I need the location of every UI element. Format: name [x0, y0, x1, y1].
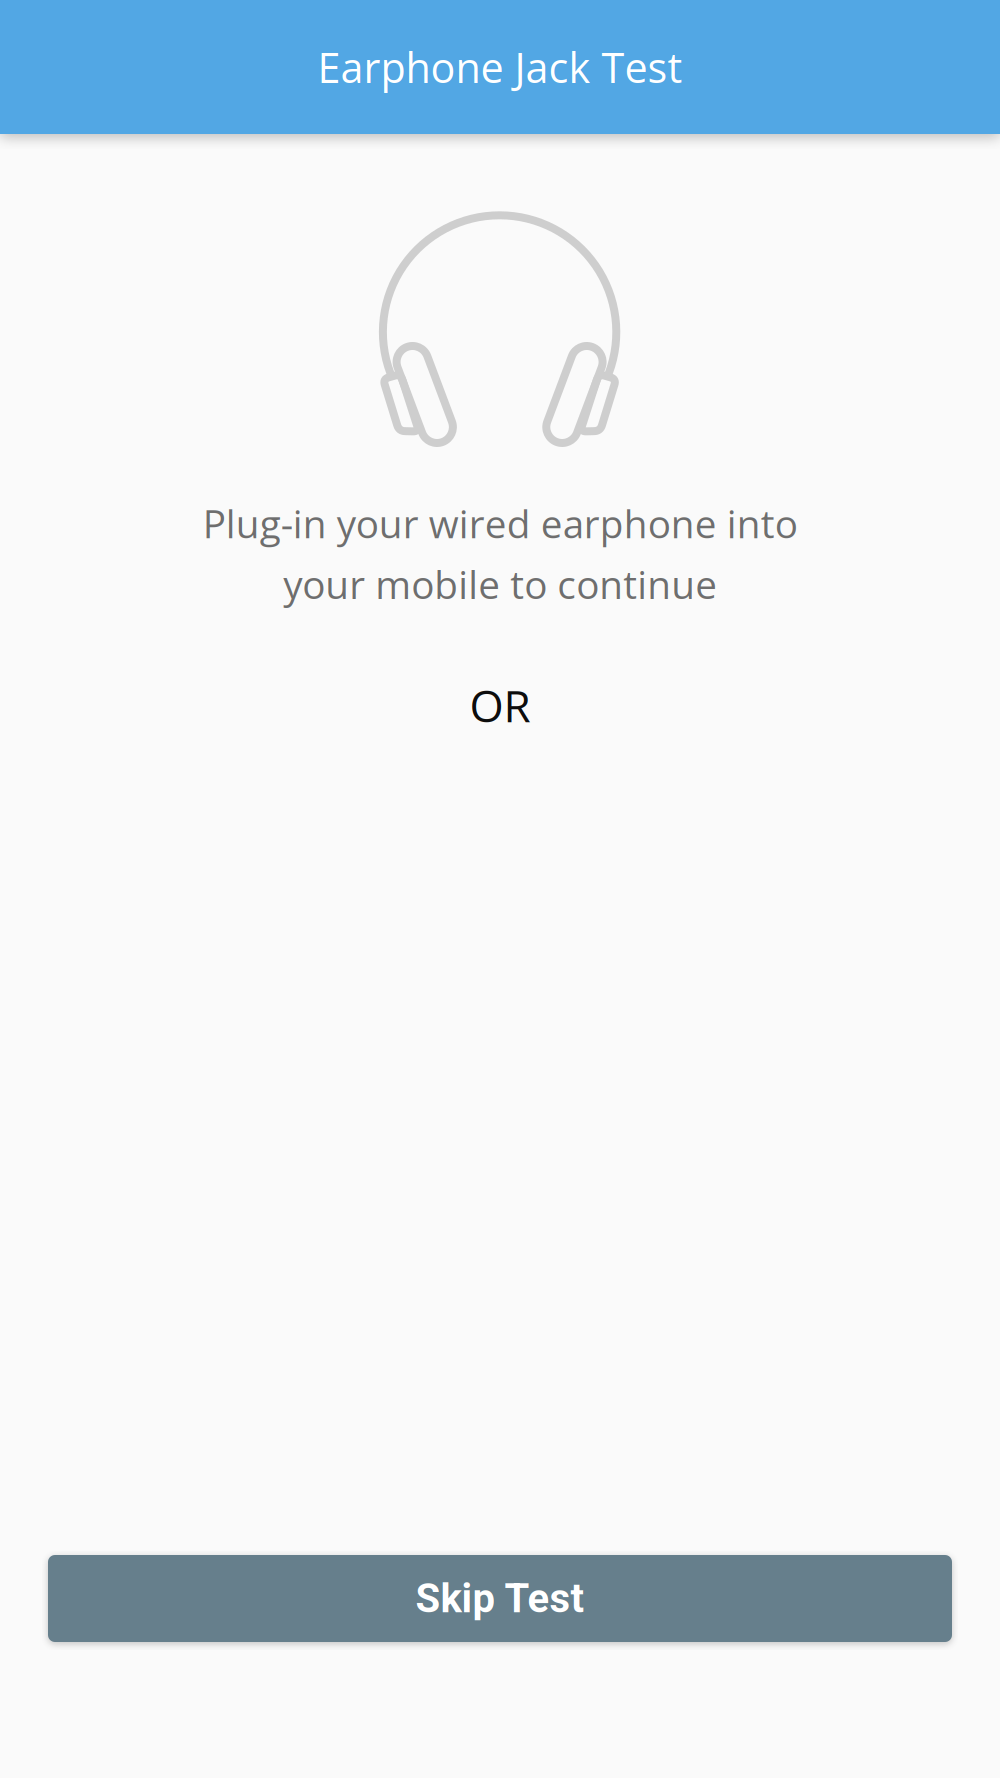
- button[interactable]: Skip Test: [48, 1555, 952, 1642]
- staticText: Skip Test: [415, 1575, 584, 1622]
- staticText: Earphone Jack Test: [317, 39, 682, 95]
- staticText: Plug-in your wired earphone into your mo…: [202, 497, 797, 610]
- staticText: OR: [469, 675, 530, 735]
